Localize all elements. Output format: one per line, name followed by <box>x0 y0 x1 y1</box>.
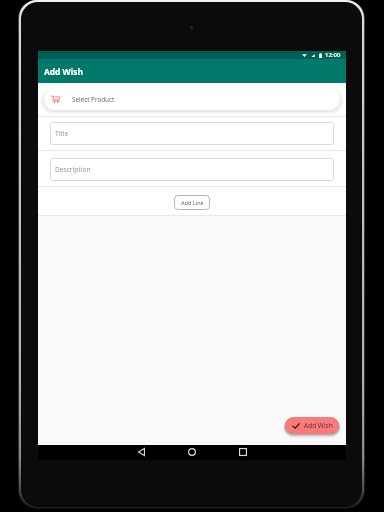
staticText: Title <box>55 129 69 138</box>
staticText: Description <box>55 165 91 174</box>
button[interactable]: Description <box>50 158 334 181</box>
staticText: Add Wish <box>44 66 83 77</box>
button[interactable]: Add Wish <box>285 417 339 434</box>
staticText: Select Product <box>72 95 115 104</box>
staticText: Add Wish <box>304 421 333 430</box>
button[interactable]: Back <box>125 444 157 459</box>
button[interactable]: Select Product <box>44 88 340 110</box>
staticText: 12:00 <box>325 51 341 59</box>
button[interactable]: Recent apps <box>227 444 259 459</box>
button[interactable]: Title <box>50 122 334 145</box>
button[interactable]: Add Link <box>174 195 210 210</box>
button[interactable]: Home <box>176 444 208 459</box>
staticText: Add Link <box>181 199 204 207</box>
